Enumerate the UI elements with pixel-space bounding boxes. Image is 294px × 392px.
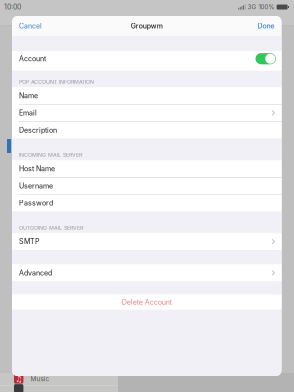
button[interactable]: SMTP: [12, 233, 281, 250]
staticText: INCOMING MAIL SERVER: [19, 152, 82, 158]
button[interactable]: Done: [250, 16, 281, 36]
button[interactable]: Cancel: [12, 16, 49, 36]
staticText: Groupwm: [131, 22, 163, 30]
button[interactable]: Name: [12, 87, 281, 104]
button[interactable]: Username: [12, 178, 281, 194]
staticText: Done: [257, 22, 274, 30]
staticText: ♫: [15, 374, 22, 384]
button[interactable]: Description: [12, 122, 281, 138]
staticText: Music: [30, 375, 49, 383]
button[interactable]: Host Name: [12, 160, 281, 177]
staticText: POP ACCOUNT INFORMATION: [19, 78, 94, 85]
button[interactable]: Advanced: [12, 264, 281, 281]
staticText: SMTP: [19, 237, 40, 246]
staticText: 100%: [259, 3, 275, 11]
staticText: Username: [19, 182, 53, 190]
staticText: OUTGOING MAIL SERVER: [19, 224, 83, 231]
staticText: Email: [19, 109, 37, 117]
staticText: Advanced: [19, 269, 52, 277]
staticText: Delete Account: [122, 298, 172, 306]
button[interactable]: Account: [255, 53, 276, 64]
staticText: Host Name: [19, 164, 55, 173]
staticText: Description: [19, 126, 57, 134]
button[interactable]: Email: [12, 105, 281, 121]
staticText: Cancel: [19, 22, 42, 30]
button[interactable]: Delete Account: [12, 294, 281, 310]
staticText: 3G: [248, 3, 257, 11]
staticText: Name: [19, 91, 38, 100]
button[interactable]: Password: [12, 195, 281, 211]
staticText: Password: [19, 199, 53, 207]
staticText: 10:00: [4, 3, 21, 11]
staticText: Account: [19, 54, 46, 63]
